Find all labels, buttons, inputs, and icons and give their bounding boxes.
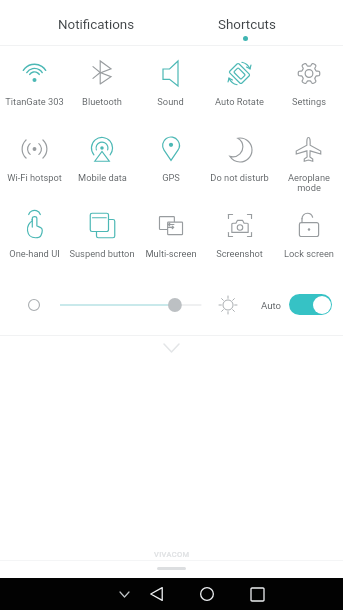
button[interactable]: Suspend button bbox=[68, 198, 136, 274]
staticText: Settings bbox=[292, 96, 326, 107]
button[interactable]: Home bbox=[193, 578, 221, 610]
button[interactable]: Shortcuts bbox=[197, 0, 297, 45]
button[interactable]: Multi-screen bbox=[136, 198, 205, 274]
staticText: Aeroplane mode bbox=[288, 172, 330, 194]
staticText: GPS bbox=[162, 172, 180, 183]
button[interactable]: TitanGate 303 bbox=[0, 46, 68, 122]
staticText: VIVACOM bbox=[154, 550, 190, 559]
button[interactable]: Notifications bbox=[36, 0, 156, 45]
button[interactable]: Wi-Fi hotspot bbox=[0, 122, 68, 198]
button[interactable]: Hide bbox=[110, 578, 138, 610]
button[interactable]: GPS bbox=[136, 122, 205, 198]
button[interactable]: Bluetooth bbox=[68, 46, 136, 122]
button[interactable]: Auto brightness toggle bbox=[289, 294, 332, 315]
staticText: Bluetooth bbox=[82, 96, 122, 107]
button[interactable]: Do not disturb bbox=[205, 122, 274, 198]
button[interactable]: Mobile data bbox=[68, 122, 136, 198]
button[interactable]: Back bbox=[142, 578, 170, 610]
button[interactable]: Low brightness bbox=[24, 293, 44, 317]
button[interactable]: Settings bbox=[274, 46, 343, 122]
staticText: Wi-Fi hotspot bbox=[7, 172, 62, 183]
staticText: Sound bbox=[157, 96, 184, 107]
staticText: TitanGate 303 bbox=[5, 96, 64, 107]
button[interactable]: Lock screen bbox=[274, 198, 343, 274]
staticText: Do not disturb bbox=[210, 172, 269, 183]
staticText: Suspend button bbox=[69, 248, 135, 259]
staticText: Lock screen bbox=[284, 248, 334, 259]
staticText: Shortcuts bbox=[218, 17, 276, 33]
button[interactable]: One-hand UI bbox=[0, 198, 68, 274]
staticText: Auto bbox=[261, 300, 282, 311]
staticText: Multi-screen bbox=[145, 248, 197, 259]
button[interactable]: Aeroplane mode bbox=[274, 122, 343, 198]
staticText: Mobile data bbox=[78, 172, 127, 183]
button[interactable]: Auto Rotate bbox=[205, 46, 274, 122]
button[interactable]: Recent apps bbox=[243, 578, 271, 610]
staticText: Screenshot bbox=[216, 248, 263, 259]
staticText: Notifications bbox=[58, 17, 135, 33]
button[interactable]: Screenshot bbox=[205, 198, 274, 274]
staticText: One-hand UI bbox=[9, 248, 60, 259]
staticText: Auto Rotate bbox=[215, 96, 264, 107]
button[interactable]: Brightness slider bbox=[52, 293, 210, 317]
button[interactable]: Sound bbox=[136, 46, 205, 122]
button[interactable]: High brightness bbox=[218, 293, 238, 317]
